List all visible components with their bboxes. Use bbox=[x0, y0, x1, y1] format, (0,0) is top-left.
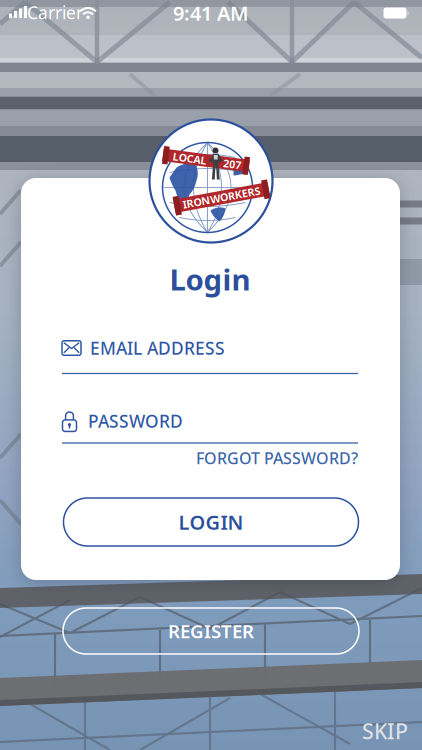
button[interactable]: PASSWORD bbox=[62, 400, 359, 446]
staticText: 207 bbox=[223, 153, 241, 168]
button[interactable]: EMAIL ADDRESS bbox=[62, 330, 359, 376]
staticText: LOGIN bbox=[178, 509, 243, 535]
staticText: FORGOT PASSWORD? bbox=[196, 447, 358, 469]
staticText: PASSWORD bbox=[88, 409, 183, 432]
staticText: EMAIL ADDRESS bbox=[90, 336, 225, 359]
staticText: Carrier bbox=[27, 1, 83, 24]
staticText: LOCAL bbox=[172, 153, 206, 168]
button[interactable]: FORGOT PASSWORD? bbox=[138, 447, 358, 469]
staticText: IRONWORKERS bbox=[182, 190, 261, 205]
staticText: Login bbox=[169, 259, 250, 298]
staticText: SKIP bbox=[362, 717, 408, 745]
staticText: 9:41 AM bbox=[173, 0, 249, 26]
button[interactable]: LOGIN bbox=[63, 498, 358, 546]
button[interactable]: REGISTER bbox=[63, 608, 359, 654]
button[interactable]: SKIP bbox=[362, 717, 408, 745]
staticText: REGISTER bbox=[168, 619, 254, 643]
